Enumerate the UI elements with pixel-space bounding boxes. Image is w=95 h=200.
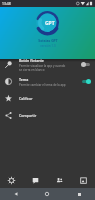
staticText: Permite visualizar la app y cuando se ci… <box>19 64 66 72</box>
button[interactable]: Toggle <box>81 61 91 68</box>
button[interactable]: Tema <box>0 73 95 90</box>
staticText: GPT <box>45 20 55 27</box>
button[interactable]: Compartir <box>0 107 95 124</box>
button[interactable]: People <box>47 172 71 188</box>
staticText: Calificar <box>19 96 33 101</box>
staticText: versión 1.0 <box>40 44 56 48</box>
button[interactable]: Botón flotante <box>0 56 95 73</box>
button[interactable]: Settings <box>0 172 23 188</box>
button[interactable]: Gallery <box>71 172 95 188</box>
staticText: Permite cambiar el tema de la app <box>19 83 66 87</box>
staticText: Compartir <box>19 113 37 118</box>
button[interactable]: Calificar <box>0 90 95 107</box>
staticText: Sotsias GPT <box>38 38 58 43</box>
staticText: 13:48 <box>2 1 11 6</box>
staticText: Botón flotante <box>19 58 44 63</box>
button[interactable]: Chat <box>23 172 47 188</box>
button[interactable]: Toggle <box>81 78 91 85</box>
button[interactable]: Recents <box>63 188 95 200</box>
button[interactable]: Back <box>0 188 31 200</box>
button[interactable]: Home <box>31 188 63 200</box>
staticText: Tema <box>19 77 29 82</box>
